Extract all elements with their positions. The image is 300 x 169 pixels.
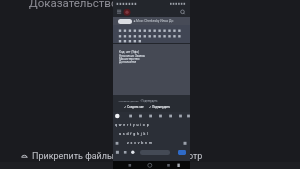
staticText: ✓ Создать чат: [124, 105, 144, 108]
other: Прикрепить: [21, 152, 29, 161]
button[interactable]: отр: [188, 151, 203, 162]
staticText: Дополнител: [119, 60, 137, 64]
staticText: Код: нет (Уфа): [119, 50, 139, 54]
staticText: Доказательство: [29, 0, 118, 9]
button[interactable]: Прикрепить: [21, 151, 115, 162]
staticText: ‹ Подтвердить: [140, 100, 158, 103]
staticText: Прикрепить файлы: [32, 151, 115, 162]
staticText: Мои: Cherkesky Илья До: [136, 19, 174, 23]
staticText: Министерство: [119, 57, 140, 61]
staticText: ✓ Подтвердить: [149, 105, 171, 108]
staticText: a s d f g h j k l: [119, 132, 148, 136]
staticText: Несколько Заявок: [119, 54, 146, 58]
staticText: q w e r t y u i o p: [115, 123, 149, 127]
staticText: ‹ Показать детали: [118, 100, 139, 103]
staticText: z x c v b n m: [127, 141, 153, 145]
